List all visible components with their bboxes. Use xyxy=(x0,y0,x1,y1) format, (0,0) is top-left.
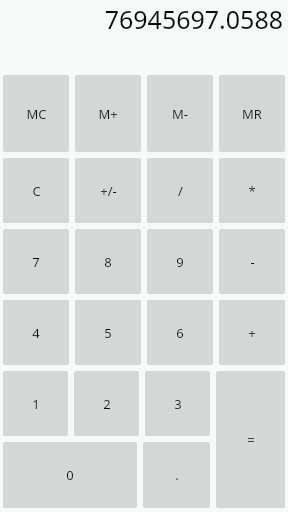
button[interactable]: 7 xyxy=(3,229,69,294)
staticText: M+ xyxy=(98,105,118,123)
button[interactable]: - xyxy=(219,229,285,294)
button[interactable]: + xyxy=(219,300,285,365)
staticText: MR xyxy=(242,105,262,123)
button[interactable]: 5 xyxy=(75,300,141,365)
staticText: - xyxy=(250,253,255,271)
staticText: = xyxy=(247,431,255,449)
button[interactable]: M- xyxy=(147,75,213,152)
staticText: + xyxy=(248,324,256,342)
button[interactable]: MC xyxy=(3,75,69,152)
staticText: 4 xyxy=(32,324,40,342)
staticText: 9 xyxy=(176,253,184,271)
staticText: * xyxy=(248,182,256,200)
staticText: 76945697.0588 xyxy=(104,2,283,36)
button[interactable]: 3 xyxy=(145,371,210,436)
staticText: MC xyxy=(26,105,47,123)
button[interactable]: 1 xyxy=(3,371,68,436)
staticText: 3 xyxy=(174,395,182,413)
button[interactable]: MR xyxy=(219,75,285,152)
button[interactable]: M+ xyxy=(75,75,141,152)
button[interactable]: 8 xyxy=(75,229,141,294)
button[interactable]: 2 xyxy=(74,371,139,436)
button[interactable]: = xyxy=(216,371,285,508)
staticText: 0 xyxy=(66,466,74,484)
staticText: 1 xyxy=(32,395,40,413)
button[interactable]: +/- xyxy=(75,158,141,223)
button[interactable]: / xyxy=(147,158,213,223)
button[interactable]: 0 xyxy=(3,442,137,508)
button[interactable]: C xyxy=(3,158,69,223)
button[interactable]: 4 xyxy=(3,300,69,365)
staticText: M- xyxy=(172,105,188,123)
staticText: / xyxy=(178,182,183,200)
staticText: . xyxy=(175,466,179,484)
staticText: +/- xyxy=(100,182,117,200)
staticText: 6 xyxy=(176,324,184,342)
staticText: 8 xyxy=(104,253,112,271)
staticText: C xyxy=(32,182,41,200)
staticText: 7 xyxy=(32,253,40,271)
button[interactable]: 6 xyxy=(147,300,213,365)
button[interactable]: * xyxy=(219,158,285,223)
staticText: 2 xyxy=(103,395,111,413)
button[interactable]: 9 xyxy=(147,229,213,294)
staticText: 5 xyxy=(104,324,112,342)
